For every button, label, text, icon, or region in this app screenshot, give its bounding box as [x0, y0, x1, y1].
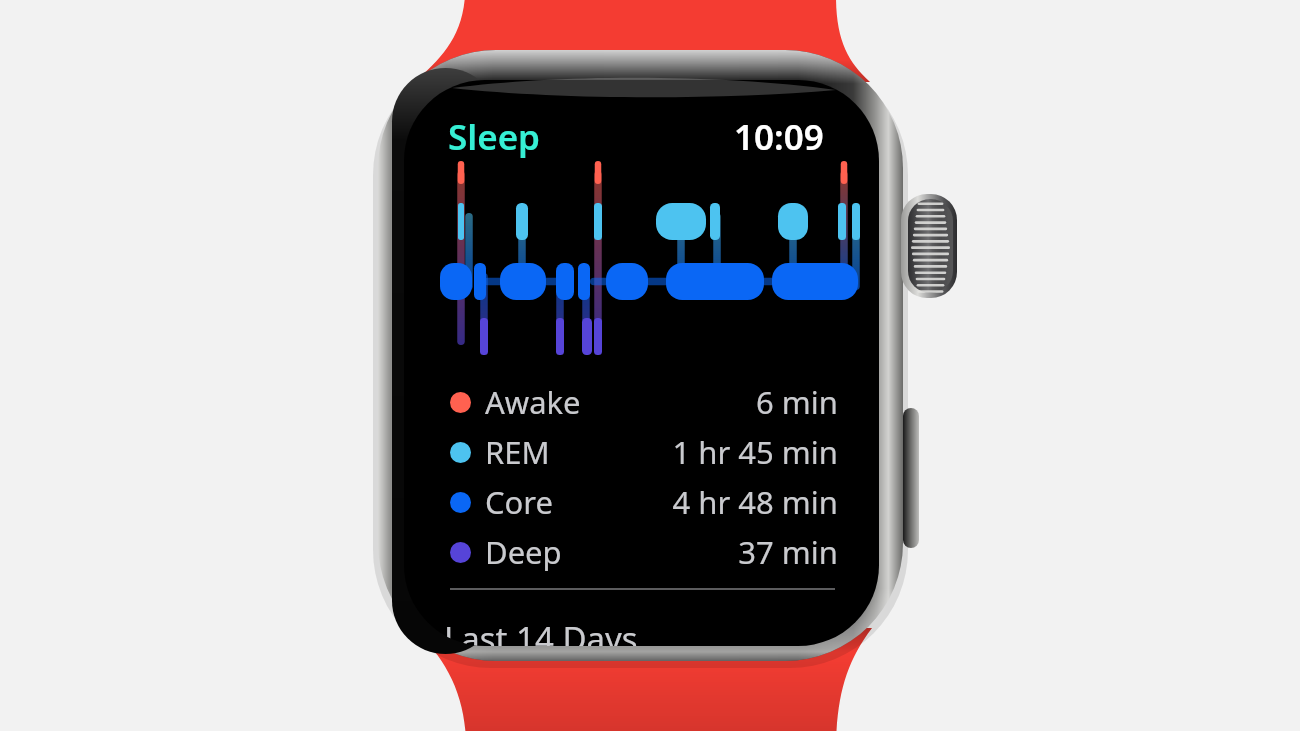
- staticText: Core: [485, 481, 554, 523]
- staticText: 1 hr 45 min: [672, 431, 838, 473]
- button[interactable]: Core: [450, 479, 838, 525]
- staticText: REM: [485, 431, 550, 473]
- button[interactable]: Sleep stages chart: [434, 158, 864, 368]
- button[interactable]: Last 14 Days: [444, 616, 844, 646]
- staticText: Last 14 Days: [444, 616, 638, 646]
- staticText: Sleep: [448, 113, 541, 161]
- staticText: 4 hr 48 min: [672, 481, 838, 523]
- staticText: 37 min: [738, 531, 838, 573]
- staticText: Deep: [485, 531, 562, 573]
- button[interactable]: Awake: [450, 379, 838, 425]
- button[interactable]: REM: [450, 429, 838, 475]
- staticText: 10:09: [734, 113, 824, 161]
- button[interactable]: Deep: [450, 529, 838, 575]
- button[interactable]: Sleep: [448, 113, 541, 161]
- other: Digital Crown: [0, 0, 1300, 731]
- staticText: 6 min: [756, 381, 838, 423]
- staticText: Awake: [485, 381, 581, 423]
